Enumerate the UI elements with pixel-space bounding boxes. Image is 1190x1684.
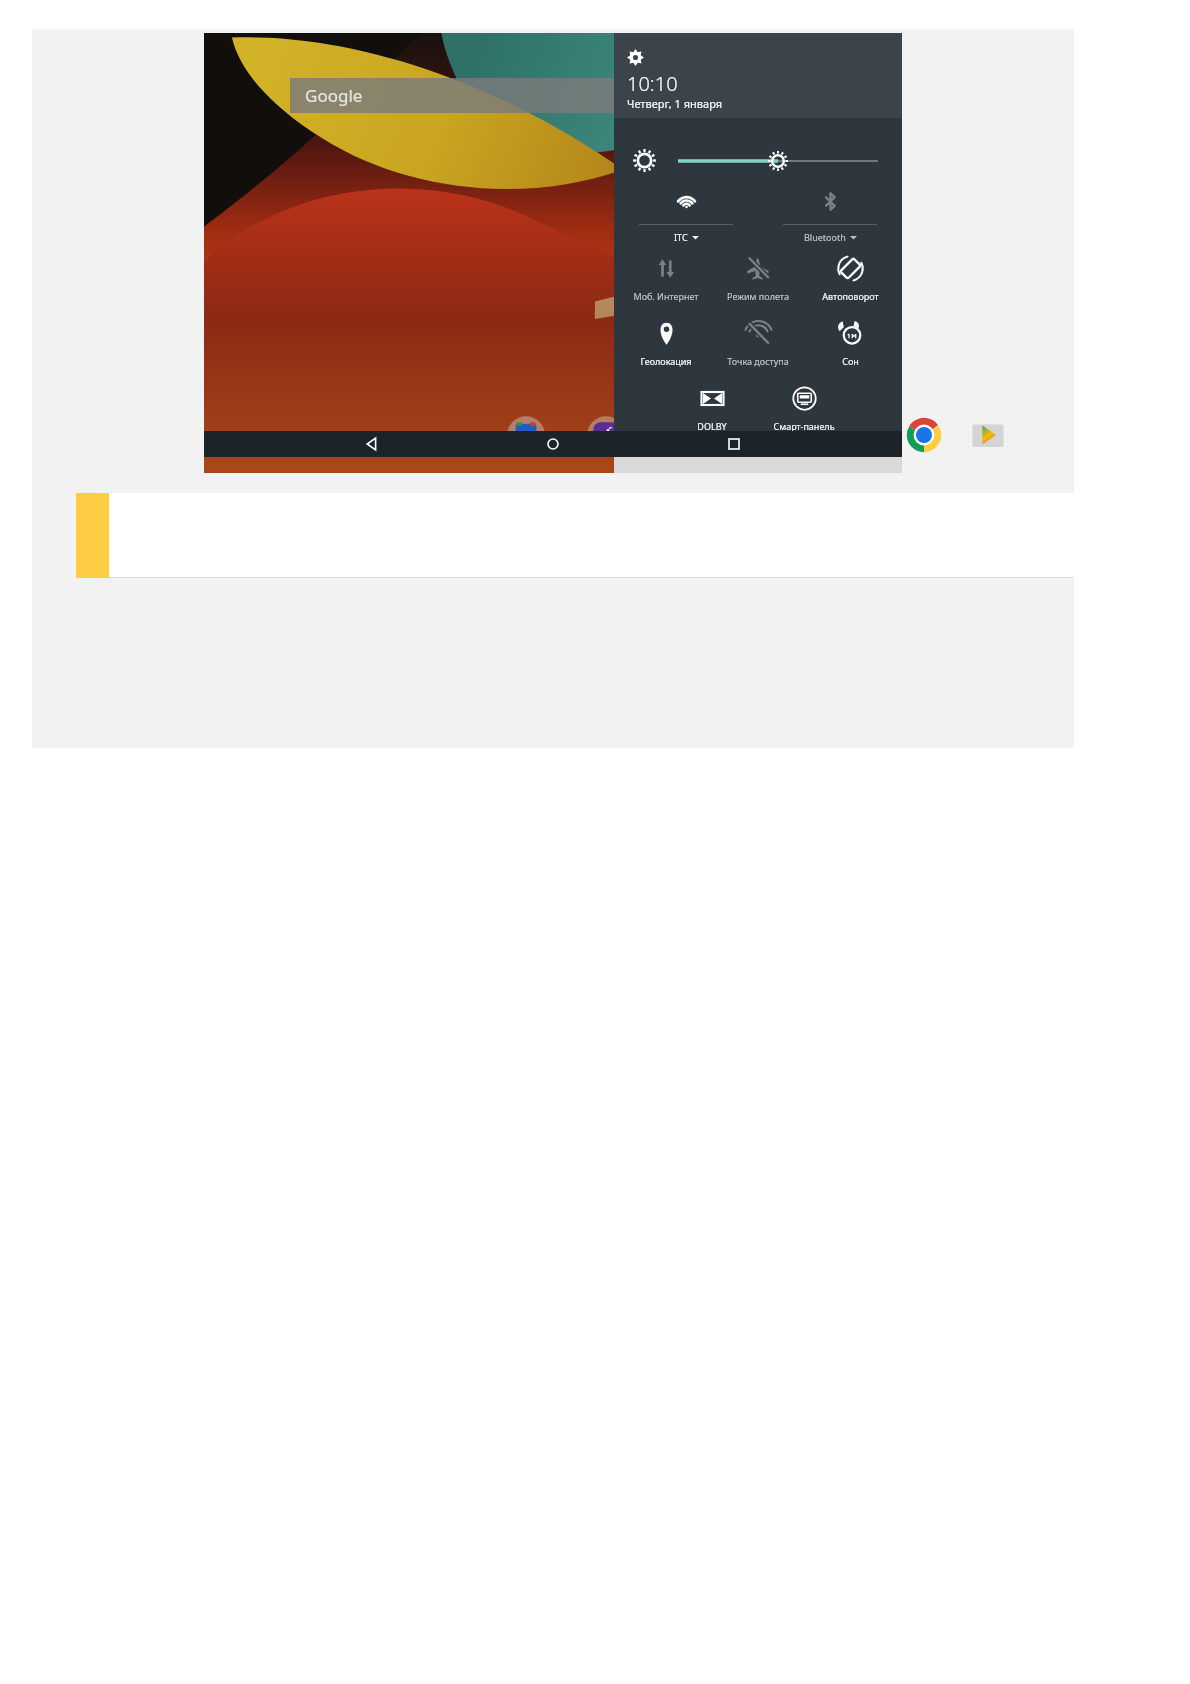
button[interactable]: Back: [359, 431, 385, 457]
staticText: Автоповорот: [822, 290, 879, 302]
button[interactable]: Settings: [627, 49, 644, 66]
button[interactable]: Смарт-панель: [760, 386, 848, 432]
staticText: Смарт-панель: [773, 420, 835, 432]
button[interactable]: Геолокация: [622, 321, 710, 367]
button[interactable]: Home: [540, 431, 566, 457]
button[interactable]: Play Store: [968, 415, 1008, 455]
staticText: Геолокация: [640, 355, 692, 367]
button[interactable]: Music: [586, 415, 626, 455]
button[interactable]: ITC: [621, 190, 751, 243]
staticText: Четверг, 1 января: [627, 96, 723, 111]
button[interactable]: Моб. Интернет: [622, 256, 710, 302]
staticText: Режим полета: [727, 290, 789, 302]
button[interactable]: Google: [290, 78, 818, 113]
button[interactable]: Bluetooth: [765, 190, 895, 243]
staticText: Точка доступа: [727, 355, 789, 367]
button[interactable]: Сон: [806, 321, 894, 367]
button[interactable]: Режим полета: [714, 256, 802, 302]
staticText: Сон: [842, 355, 859, 367]
other: Brightness: [633, 149, 656, 172]
button[interactable]: Brightness slider: [678, 151, 878, 171]
button[interactable]: Chrome: [904, 415, 944, 455]
button[interactable]: Автоповорот: [806, 256, 894, 302]
staticText: 10:10: [627, 70, 678, 97]
button[interactable]: DOLBY: [668, 386, 756, 432]
staticText: Google: [305, 84, 363, 107]
staticText: Bluetooth: [804, 231, 846, 243]
button[interactable]: Recents: [721, 431, 747, 457]
button[interactable]: Google News: [506, 415, 546, 455]
staticText: DOLBY: [697, 420, 727, 432]
button[interactable]: Точка доступа: [714, 321, 802, 367]
staticText: Моб. Интернет: [633, 290, 699, 302]
staticText: ITC: [674, 231, 688, 243]
